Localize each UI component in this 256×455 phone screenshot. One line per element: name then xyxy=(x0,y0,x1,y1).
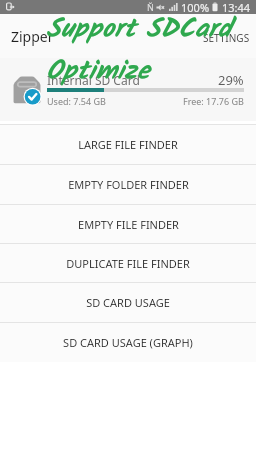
staticText: SD CARD USAGE (GRAPH) xyxy=(63,335,193,350)
staticText: 13:44 xyxy=(222,0,251,14)
staticText: Free: 17.76 GB xyxy=(183,95,244,107)
button[interactable]: SD CARD USAGE xyxy=(0,283,256,322)
button[interactable]: SD CARD USAGE (GRAPH) xyxy=(0,323,256,362)
staticText: 29% xyxy=(218,71,244,85)
staticText: EMPTY FOLDER FINDER xyxy=(68,177,189,192)
staticText: Zipper xyxy=(11,27,54,46)
staticText: SD CARD USAGE xyxy=(86,295,170,310)
staticText: SETTINGS xyxy=(203,31,250,45)
button[interactable]: DUPLICATE FILE FINDER xyxy=(0,244,256,282)
button[interactable]: LARGE FILE FINDER xyxy=(0,125,256,164)
staticText: DUPLICATE FILE FINDER xyxy=(66,256,190,271)
staticText: Used: 7.54 GB xyxy=(47,95,106,107)
staticText: LARGE FILE FINDER xyxy=(78,137,178,152)
button[interactable]: SETTINGS xyxy=(197,14,256,48)
staticText: 100% xyxy=(181,0,210,14)
staticText: Ň xyxy=(147,1,154,13)
staticText: Support SDCard xyxy=(46,9,232,51)
staticText: EMPTY FILE FINDER xyxy=(78,217,179,232)
button[interactable]: EMPTY FOLDER FINDER xyxy=(0,165,256,204)
button[interactable]: EMPTY FILE FINDER xyxy=(0,205,256,243)
staticText: Internal SD Card xyxy=(47,72,140,86)
button[interactable]: Internal SD Card xyxy=(0,58,256,121)
staticText: Optimize xyxy=(46,51,150,93)
